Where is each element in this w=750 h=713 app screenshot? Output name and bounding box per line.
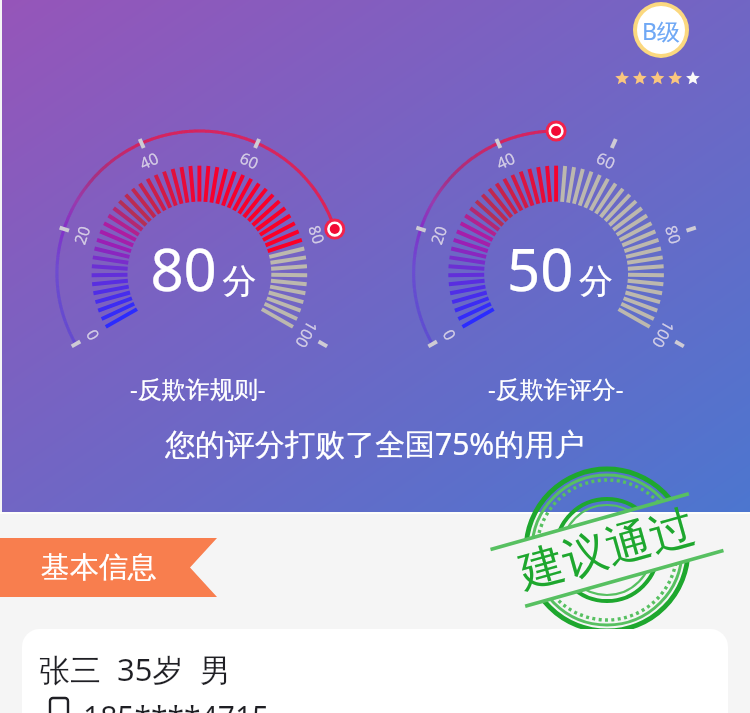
button[interactable]: 张三 35岁 男 (22, 629, 728, 713)
staticText: -反欺诈评分- (488, 372, 624, 405)
staticText: 185****4715 (83, 696, 270, 713)
staticText: 基本信息 (41, 549, 157, 586)
staticText: 张三 35岁 男 (39, 648, 231, 690)
staticText: 您的评分打败了全国75%的用户 (165, 423, 585, 464)
staticText: -反欺诈规则- (130, 372, 266, 405)
staticText: B级 (642, 15, 680, 46)
button[interactable]: 基本信息 (0, 538, 217, 597)
button[interactable]: B级 (633, 2, 689, 58)
